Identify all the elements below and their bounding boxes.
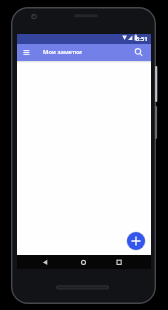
button[interactable] — [38, 255, 52, 269]
staticText: Мои заметки — [43, 48, 82, 56]
button[interactable] — [132, 46, 145, 59]
staticText: 5:51 — [136, 35, 148, 43]
button[interactable] — [21, 47, 33, 59]
button[interactable] — [76, 255, 91, 269]
button[interactable] — [112, 255, 126, 269]
button[interactable] — [127, 232, 145, 250]
